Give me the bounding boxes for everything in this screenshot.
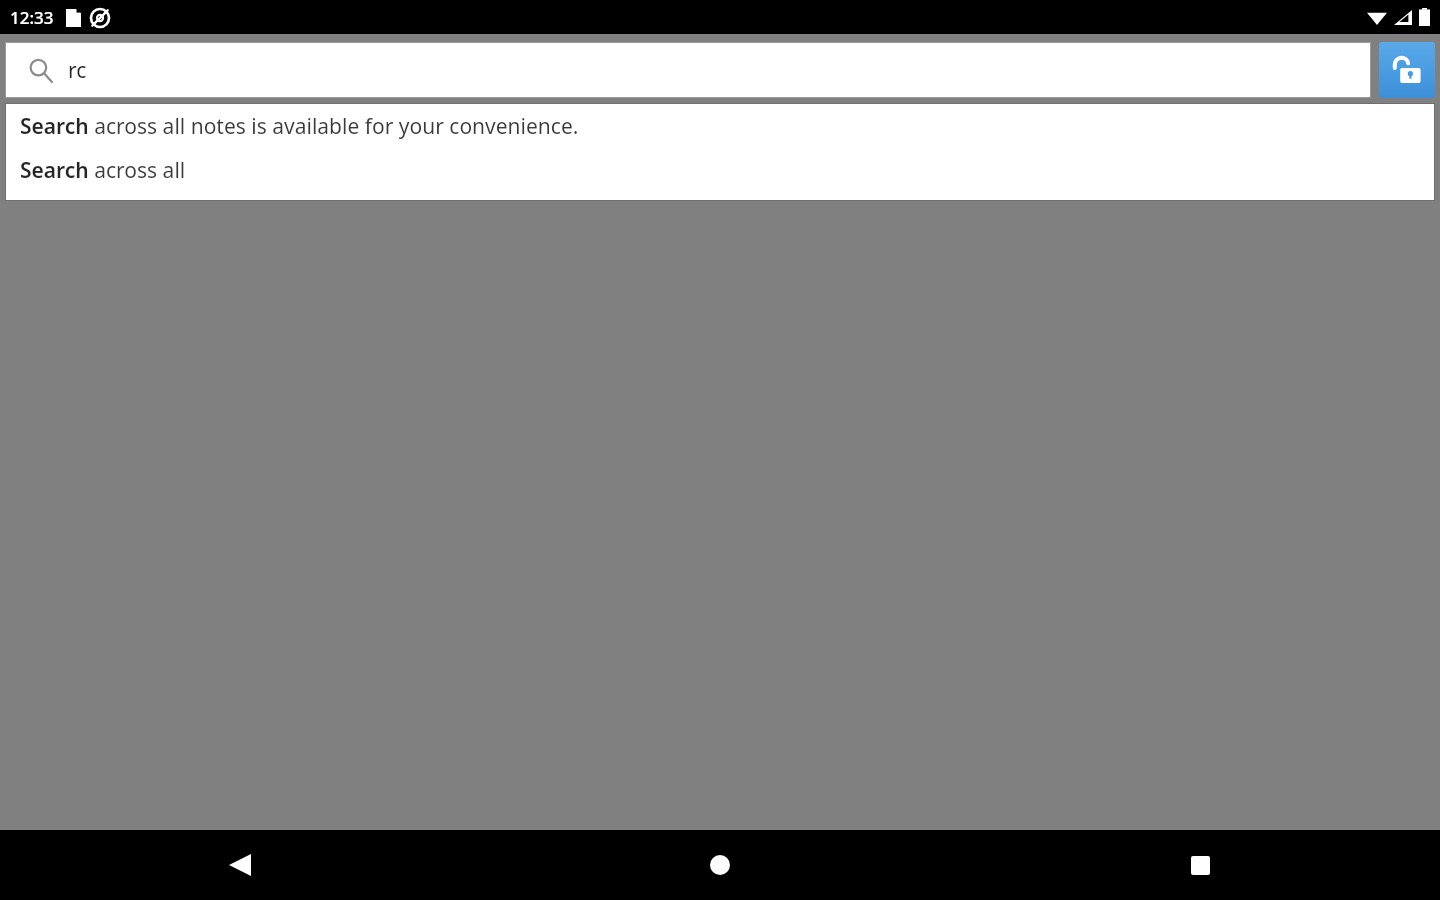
button[interactable]: Back: [204, 830, 276, 900]
button[interactable]: Unlock notes: [1379, 42, 1435, 98]
button[interactable]: Search across all notes is available for…: [6, 104, 1434, 148]
button[interactable]: rc: [6, 43, 1370, 97]
staticText: Search across all notes is available for…: [20, 112, 579, 141]
staticText: Search across all: [20, 156, 186, 185]
staticText: rc: [68, 56, 87, 85]
staticText: 12:33: [10, 6, 54, 29]
button[interactable]: Search across all: [6, 148, 1434, 192]
button[interactable]: Home: [684, 830, 756, 900]
button[interactable]: Recent apps: [1164, 830, 1236, 900]
